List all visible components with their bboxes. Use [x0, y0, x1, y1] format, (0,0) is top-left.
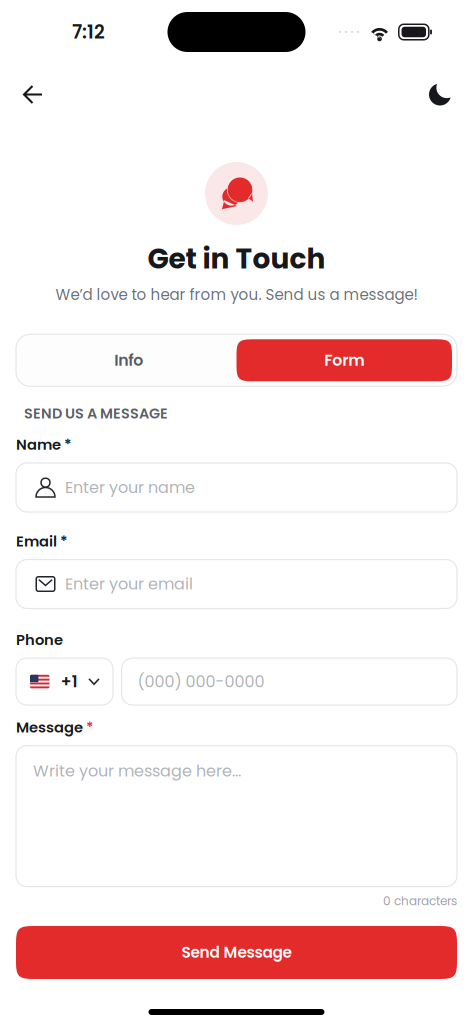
staticText: *	[60, 531, 68, 551]
staticText: Info	[114, 349, 143, 371]
staticText: Message	[16, 717, 83, 738]
button[interactable]: Info	[21, 339, 236, 381]
button[interactable]: Send Message	[16, 926, 457, 979]
staticText: Email	[16, 531, 57, 551]
staticText: Enter your email	[65, 573, 193, 595]
staticText: Send Message	[181, 942, 291, 963]
staticText: Enter your name	[65, 476, 195, 499]
staticText: (000) 000-0000	[138, 670, 265, 693]
button[interactable]: Back	[0, 74, 62, 115]
button[interactable]: Form	[236, 339, 452, 381]
staticText: We’d love to hear from you. Send us a me…	[55, 284, 417, 305]
staticText: Form	[324, 349, 364, 371]
staticText: *	[86, 717, 94, 738]
staticText: 0 characters	[383, 893, 457, 909]
staticText: Get in Touch	[147, 239, 325, 278]
staticText: *	[64, 434, 72, 455]
staticText: SEND US A MESSAGE	[24, 403, 168, 423]
staticText: Phone	[16, 629, 63, 650]
staticText: +1	[61, 670, 78, 693]
button[interactable]: Country code	[16, 658, 113, 705]
staticText: Name	[16, 434, 61, 455]
staticText: • • • •	[338, 26, 360, 38]
staticText: 7:12	[72, 19, 105, 45]
button[interactable]: Toggle dark mode	[409, 74, 473, 115]
staticText: Write your message here...	[33, 760, 241, 782]
